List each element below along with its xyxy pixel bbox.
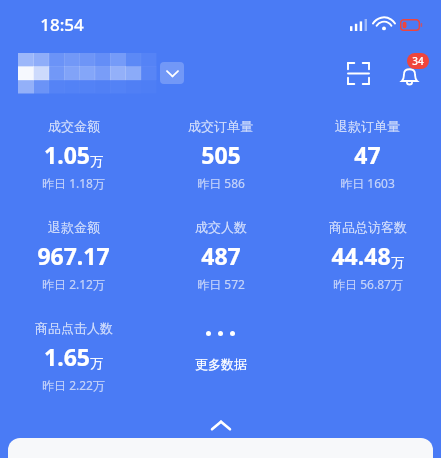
button[interactable]: Collapse <box>199 412 243 438</box>
staticText: 商品总访客数 <box>329 219 407 235</box>
staticText: 18:54 <box>40 13 84 36</box>
staticText: 商品点击人数 <box>35 320 113 336</box>
staticText: 昨日 2.12万 <box>42 276 105 292</box>
staticText: 退款金额 <box>48 219 100 235</box>
staticText: 505 <box>201 139 241 170</box>
staticText: 成交金额 <box>48 118 100 134</box>
button[interactable]: 成交人数 <box>147 219 294 292</box>
button[interactable]: 退款订单量 <box>294 118 441 191</box>
button[interactable]: 商品总访客数 <box>294 219 441 292</box>
button[interactable]: 商品点击人数 <box>0 320 147 393</box>
button[interactable]: 更多数据 <box>147 320 294 372</box>
button[interactable]: 退款金额 <box>0 219 147 292</box>
button[interactable]: 成交金额 <box>0 118 147 191</box>
staticText: 967.17 <box>37 240 110 271</box>
staticText: 万 <box>90 355 103 371</box>
button[interactable]: Scan QR code <box>340 55 376 91</box>
staticText: 487 <box>201 240 241 271</box>
staticText: 44.48 <box>331 240 391 271</box>
staticText: 更多数据 <box>195 356 247 372</box>
staticText: 昨日 1603 <box>340 175 395 191</box>
staticText: 1.65 <box>44 341 90 372</box>
staticText: 47 <box>354 139 381 170</box>
staticText: 万 <box>391 254 404 270</box>
staticText: 昨日 56.87万 <box>333 276 403 292</box>
staticText: 昨日 572 <box>197 276 245 292</box>
button[interactable]: Notifications, 34 unread <box>388 52 430 94</box>
button[interactable]: 成交订单量 <box>147 118 294 191</box>
staticText: 昨日 586 <box>197 175 245 191</box>
staticText: 成交订单量 <box>188 118 253 134</box>
staticText: 昨日 1.18万 <box>42 175 105 191</box>
staticText: 万 <box>90 153 103 169</box>
staticText: 昨日 2.22万 <box>42 377 105 393</box>
staticText: 1.05 <box>44 139 90 170</box>
staticText: 成交人数 <box>195 219 247 235</box>
button[interactable] <box>18 53 184 93</box>
staticText: 34 <box>412 54 424 68</box>
staticText: 退款订单量 <box>335 118 400 134</box>
